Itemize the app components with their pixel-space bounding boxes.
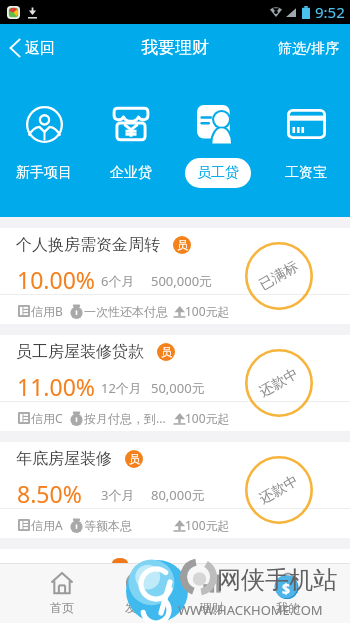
staticText: 500,000元 (151, 272, 213, 290)
button[interactable]: 理财 (174, 563, 250, 623)
staticText: 企业贷 (110, 164, 152, 182)
staticText: 信用B (31, 303, 63, 319)
staticText: 员 (161, 345, 172, 359)
button[interactable]: 我的 (250, 563, 326, 623)
staticText: 工资宝 (285, 164, 327, 182)
staticText: 11.00% (17, 371, 95, 402)
button[interactable]: 企业贷 (87, 71, 174, 217)
staticText: 还款中 (256, 472, 302, 508)
staticText: 100元起 (185, 410, 230, 426)
staticText: 信用A (31, 517, 63, 533)
other: 工资宝 (287, 109, 326, 139)
button[interactable]: 新手项目 (0, 71, 87, 217)
staticText: 信用C (31, 410, 63, 426)
staticText: $ (282, 579, 291, 598)
button[interactable]: 返回 (0, 32, 65, 64)
button[interactable]: 发现 (99, 563, 174, 623)
staticText: 50,000元 (151, 379, 205, 397)
staticText: 3个月 (101, 486, 135, 504)
staticText: 理财 (200, 600, 224, 615)
staticText: 个人换房需资金周转 (16, 235, 160, 255)
staticText: 发现 (125, 600, 149, 615)
button[interactable]: 筛选/排序 (268, 30, 350, 65)
staticText: 12个月 (101, 379, 142, 397)
staticText: 10.00% (17, 264, 95, 295)
button[interactable]: 员工贷 (174, 71, 262, 217)
staticText: 9:52 (315, 2, 345, 22)
staticText: 一次性还本付息 (84, 304, 168, 319)
staticText: WWW.HACKHOME.COM (178, 601, 323, 619)
staticText: 年底房屋装修 (16, 449, 112, 469)
staticText: 6个月 (101, 272, 135, 290)
button[interactable]: 工资宝 (262, 71, 350, 217)
staticText: 100元起 (185, 517, 230, 533)
staticText: 返回 (25, 39, 55, 58)
staticText: 首页 (50, 600, 74, 615)
staticText: 网侠手机站 (217, 565, 337, 595)
other: 新手项目 (26, 106, 63, 143)
other: 企业贷 (112, 106, 150, 142)
button[interactable]: 首页 (24, 563, 99, 623)
staticText: 筛选/排序 (278, 38, 340, 57)
other: 员工贷 (197, 105, 239, 143)
staticText: 还款中 (256, 365, 302, 401)
staticText: 员 (177, 238, 188, 252)
button[interactable]: 年底房屋装修 (0, 442, 350, 538)
staticText: 100元起 (185, 303, 230, 319)
staticText: 等额本息 (84, 518, 132, 533)
staticText: 员工贷 (197, 164, 239, 182)
staticText: 新手项目 (16, 164, 72, 182)
staticText: 我要理财 (141, 37, 209, 58)
staticText: 员 (129, 452, 140, 466)
staticText: 8.50% (17, 478, 82, 509)
staticText: 我的 (276, 600, 300, 615)
staticText: 已满标 (256, 258, 302, 294)
button[interactable]: 个人换房需资金周转 (0, 228, 350, 324)
staticText: 员工房屋装修贷款 (16, 342, 144, 362)
staticText: 按月付息，到... (84, 410, 166, 426)
staticText: 80,000元 (151, 486, 205, 504)
button[interactable]: 员工房屋装修贷款 (0, 335, 350, 431)
